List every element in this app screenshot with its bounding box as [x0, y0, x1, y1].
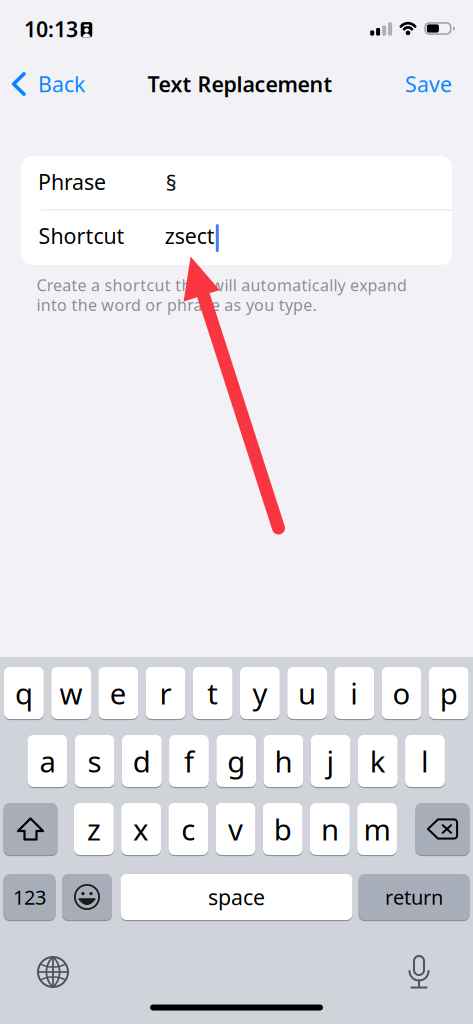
staticText: t [207, 673, 218, 712]
button[interactable]: Emoji [62, 874, 112, 922]
button[interactable]: f [169, 735, 209, 789]
staticText: j [327, 741, 335, 780]
button[interactable]: k [358, 735, 398, 789]
staticText: b [274, 809, 292, 848]
staticText: s [88, 741, 102, 780]
staticText: h [274, 741, 292, 780]
staticText: Text Replacement [147, 70, 332, 98]
staticText: l [421, 741, 429, 780]
staticText: w [60, 673, 83, 712]
button[interactable]: z [74, 803, 114, 857]
button[interactable]: s [75, 735, 114, 789]
staticText: e [110, 673, 127, 712]
button[interactable]: h [263, 735, 303, 789]
staticText: f [184, 741, 194, 780]
staticText: d [133, 741, 151, 780]
staticText: q [15, 673, 33, 712]
staticText: into the word or phrase as you type. [36, 294, 316, 315]
staticText: m [364, 809, 391, 848]
button[interactable]: p [429, 667, 469, 721]
button[interactable]: Shift [3, 803, 57, 857]
staticText: y [252, 673, 267, 712]
staticText: 123 [13, 884, 46, 910]
staticText: u [298, 673, 316, 712]
staticText: 10:13 [24, 15, 78, 43]
button[interactable]: d [122, 735, 162, 789]
button[interactable]: Dictate [392, 947, 446, 997]
button[interactable]: v [216, 803, 255, 857]
button[interactable]: i [334, 667, 374, 721]
staticText: Shortcut [39, 222, 125, 250]
staticText: o [392, 673, 410, 712]
button[interactable]: a [27, 735, 67, 789]
staticText: Create a shortcut that will automaticall… [37, 274, 407, 296]
button[interactable]: t [193, 667, 233, 721]
button[interactable]: y [240, 667, 280, 721]
staticText: Back [38, 70, 85, 98]
staticText: v [228, 809, 243, 848]
button[interactable]: c [168, 803, 208, 857]
staticText: i [350, 673, 358, 712]
button[interactable]: m [357, 803, 397, 857]
staticText: p [440, 673, 458, 712]
staticText: space [208, 883, 265, 911]
button[interactable]: Delete [415, 803, 469, 857]
staticText: n [321, 809, 339, 848]
button[interactable]: n [310, 803, 350, 857]
staticText: return [385, 884, 443, 910]
staticText: z [87, 809, 101, 848]
button[interactable]: g [216, 735, 256, 789]
button[interactable]: w [51, 667, 91, 721]
button[interactable]: return [358, 874, 469, 922]
button[interactable]: u [287, 667, 327, 721]
button[interactable]: Next keyboard [26, 947, 80, 997]
button[interactable]: j [311, 735, 350, 789]
staticText: Phrase [38, 168, 106, 196]
button[interactable]: l [405, 735, 445, 789]
button[interactable]: Back [12, 64, 102, 104]
button[interactable]: o [382, 667, 421, 721]
button[interactable]: r [146, 667, 185, 721]
staticText: c [181, 809, 195, 848]
staticText: Save [405, 70, 452, 98]
button[interactable]: b [263, 803, 303, 857]
button[interactable]: 123 [3, 874, 55, 922]
staticText: a [39, 741, 55, 780]
button[interactable]: e [98, 667, 138, 721]
button[interactable]: x [121, 803, 161, 857]
staticText: r [159, 673, 171, 712]
button[interactable]: q [4, 667, 44, 721]
staticText: x [133, 809, 149, 848]
staticText: g [227, 741, 245, 780]
staticText: zsect [165, 222, 215, 250]
button[interactable]: space [120, 874, 352, 922]
staticText: k [370, 741, 386, 780]
staticText: § [166, 168, 177, 197]
button[interactable]: Save [388, 64, 452, 104]
